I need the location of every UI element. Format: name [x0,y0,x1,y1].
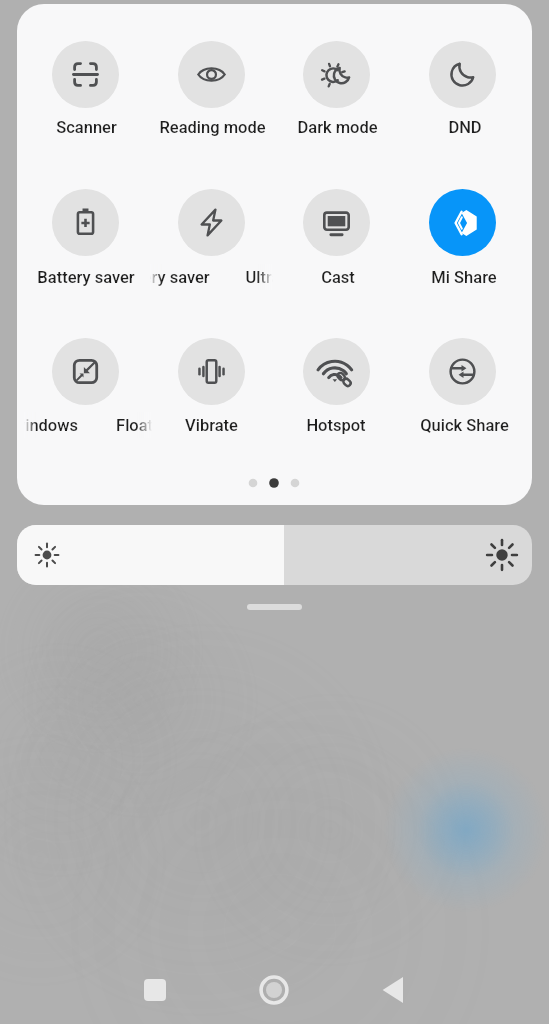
button[interactable]: Recent apps [131,966,179,1014]
staticText: Battery saver [37,268,135,287]
staticText: Ultra battery saver [245,268,302,287]
button[interactable]: Hotspot [292,327,380,415]
button[interactable]: Scanner [41,30,129,118]
button[interactable]: Cast [292,178,380,266]
button[interactable]: Reading mode [167,30,255,118]
staticText: Floating windows [116,416,168,435]
staticText: Cast [321,268,355,287]
button[interactable]: DND [418,30,506,118]
staticText: Hotspot [306,416,366,435]
staticText: Floating windows [18,416,78,435]
staticText: Dark mode [297,118,378,137]
staticText: Vibrate [185,416,238,435]
button[interactable]: Brightness [17,525,532,585]
staticText: Scanner [56,118,117,137]
button[interactable]: Floating windows [41,327,129,415]
button[interactable]: Vibrate [167,327,255,415]
staticText: Quick Share [420,416,509,435]
button[interactable]: Dark mode [292,30,380,118]
button[interactable]: Home [250,966,298,1014]
staticText: Battery saver [148,268,210,287]
staticText: Reading mode [159,118,266,137]
button[interactable]: Quick Share [418,327,506,415]
button[interactable]: Mi Share [418,178,506,266]
staticText: DND [448,118,482,137]
button[interactable]: Back [370,966,418,1014]
button[interactable]: Battery saver [41,178,129,266]
staticText: Mi Share [431,268,497,287]
button[interactable]: Ultra battery saver [167,178,255,266]
